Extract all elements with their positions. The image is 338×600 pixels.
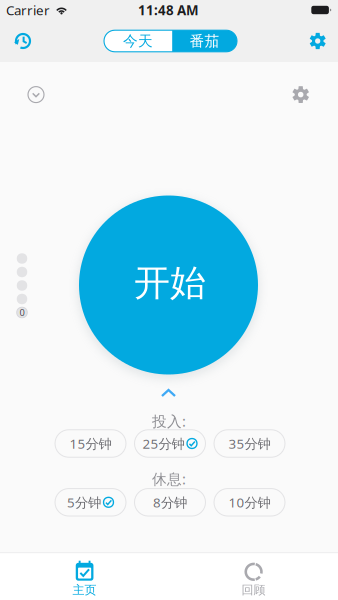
staticText: Carrier	[6, 1, 50, 19]
button[interactable]: Collapse	[19, 78, 53, 112]
button[interactable]: History	[3, 20, 43, 62]
button[interactable]: 回顾	[169, 552, 338, 600]
button[interactable]: 15分钟	[55, 430, 126, 457]
staticText: 8分钟	[153, 493, 187, 511]
staticText: 今天	[123, 32, 153, 50]
button[interactable]: Expand options	[151, 384, 185, 402]
staticText: 5分钟	[67, 493, 101, 511]
staticText: 主页	[73, 582, 97, 597]
button[interactable]: 8分钟	[134, 489, 205, 516]
staticText: 休息:	[152, 469, 186, 489]
staticText: 回顾	[242, 582, 266, 597]
button[interactable]: 10分钟	[214, 489, 285, 516]
staticText: 15分钟	[69, 435, 111, 452]
button[interactable]: Settings	[298, 20, 338, 62]
staticText: 10分钟	[228, 493, 270, 511]
button[interactable]: 今天	[104, 30, 172, 52]
staticText: 35分钟	[228, 435, 270, 452]
staticText: 11:48 AM	[138, 1, 199, 19]
button[interactable]: 开始	[79, 195, 258, 374]
staticText: 番茄	[190, 32, 220, 50]
button[interactable]: Timer settings	[284, 78, 318, 112]
button[interactable]: 25分钟	[134, 430, 205, 457]
staticText: 开始	[134, 261, 206, 305]
staticText: 25分钟	[142, 435, 184, 452]
button[interactable]: 主页	[0, 552, 169, 600]
staticText: 0	[19, 306, 24, 319]
button[interactable]: 5分钟	[55, 489, 126, 516]
button[interactable]: 番茄	[172, 30, 237, 52]
button[interactable]: 35分钟	[214, 430, 285, 457]
staticText: 投入:	[152, 411, 186, 431]
